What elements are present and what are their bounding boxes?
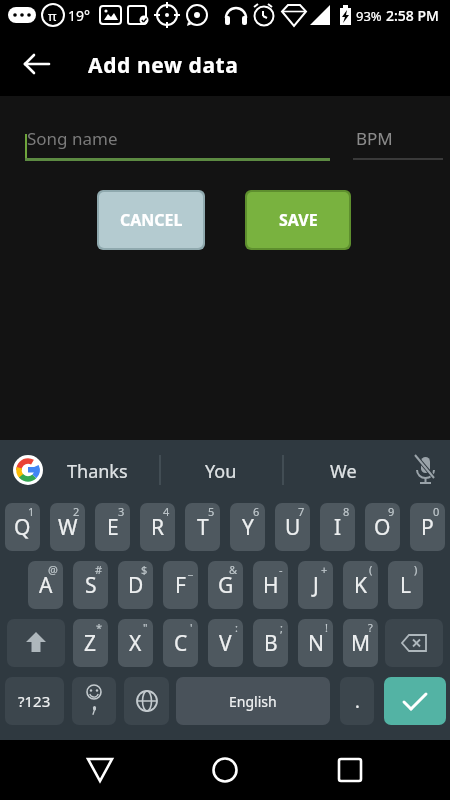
button[interactable] bbox=[124, 677, 169, 725]
button[interactable]: J bbox=[298, 561, 333, 609]
staticText: H bbox=[263, 571, 279, 600]
button[interactable] bbox=[385, 619, 443, 667]
button[interactable]: Y bbox=[230, 503, 265, 551]
staticText: ?123 bbox=[18, 691, 51, 711]
staticText: & bbox=[229, 562, 238, 577]
staticText: C bbox=[174, 629, 188, 658]
button[interactable]: S bbox=[73, 561, 108, 609]
staticText: Q bbox=[14, 513, 31, 542]
staticText: D bbox=[128, 571, 144, 600]
staticText: I bbox=[334, 513, 342, 542]
staticText: * bbox=[96, 620, 103, 635]
button[interactable]: W bbox=[50, 503, 85, 551]
button[interactable]: SAVE bbox=[247, 192, 349, 248]
button[interactable]: D bbox=[118, 561, 153, 609]
staticText: M bbox=[351, 629, 371, 658]
button[interactable]: H bbox=[253, 561, 288, 609]
staticText: 7 bbox=[298, 504, 305, 519]
button[interactable]: I bbox=[320, 503, 355, 551]
staticText: A bbox=[39, 571, 53, 600]
button[interactable]: G bbox=[208, 561, 243, 609]
staticText: _ bbox=[188, 562, 193, 577]
button[interactable]: O bbox=[365, 503, 400, 551]
button[interactable]: T bbox=[185, 503, 220, 551]
button[interactable]: . bbox=[340, 677, 374, 725]
button[interactable]: M bbox=[343, 619, 378, 667]
staticText: K bbox=[354, 571, 367, 600]
staticText: 93% bbox=[356, 7, 382, 25]
staticText: # bbox=[95, 562, 103, 577]
staticText: 3 bbox=[118, 504, 125, 519]
staticText: 19° bbox=[68, 6, 91, 25]
button[interactable]: B bbox=[253, 619, 288, 667]
staticText: : bbox=[235, 620, 238, 635]
staticText: U bbox=[285, 513, 301, 542]
button[interactable]: X bbox=[118, 619, 153, 667]
button[interactable]: V bbox=[208, 619, 243, 667]
staticText: L bbox=[400, 571, 412, 600]
staticText: Add new data bbox=[88, 51, 239, 80]
staticText: We bbox=[330, 459, 357, 484]
staticText: " bbox=[143, 620, 148, 635]
button[interactable]: CANCEL bbox=[99, 192, 203, 248]
button[interactable]: U bbox=[275, 503, 310, 551]
staticText: T bbox=[197, 513, 209, 542]
button[interactable] bbox=[7, 619, 65, 667]
button[interactable]: ?123 bbox=[5, 677, 64, 725]
button[interactable] bbox=[384, 677, 446, 725]
staticText: 1 bbox=[28, 504, 35, 519]
staticText: BPM bbox=[356, 127, 393, 150]
staticText: 2:58 PM bbox=[386, 6, 439, 25]
staticText: P bbox=[421, 513, 434, 542]
staticText: 6 bbox=[253, 504, 260, 519]
button[interactable]: Q bbox=[5, 503, 40, 551]
staticText: ? bbox=[368, 620, 373, 635]
staticText: V bbox=[219, 629, 232, 658]
staticText: Thanks bbox=[67, 459, 128, 484]
button[interactable]: L bbox=[388, 561, 423, 609]
staticText: S bbox=[85, 571, 97, 600]
button[interactable] bbox=[325, 745, 375, 795]
button[interactable]: N bbox=[298, 619, 333, 667]
staticText: R bbox=[151, 513, 165, 542]
staticText: 9 bbox=[388, 504, 395, 519]
staticText: $ bbox=[141, 562, 148, 577]
button[interactable]: K bbox=[343, 561, 378, 609]
staticText: Z bbox=[84, 629, 97, 658]
staticText: Y bbox=[242, 513, 254, 542]
staticText: 0 bbox=[433, 504, 440, 519]
button[interactable]: P bbox=[410, 503, 445, 551]
button[interactable]: English bbox=[176, 677, 330, 725]
staticText: W bbox=[58, 513, 78, 542]
staticText: SAVE bbox=[279, 209, 318, 231]
staticText: @ bbox=[48, 562, 58, 577]
staticText: E bbox=[107, 513, 119, 542]
staticText: ; bbox=[280, 620, 283, 635]
button[interactable] bbox=[200, 745, 250, 795]
staticText: 5 bbox=[208, 504, 215, 519]
staticText: ' bbox=[190, 620, 193, 635]
button[interactable]: E bbox=[95, 503, 130, 551]
staticText: N bbox=[308, 629, 324, 658]
button[interactable]: Z bbox=[73, 619, 108, 667]
staticText: - bbox=[279, 562, 283, 577]
button[interactable]: R bbox=[140, 503, 175, 551]
staticText: ! bbox=[325, 620, 328, 635]
staticText: + bbox=[321, 562, 328, 577]
staticText: ( bbox=[369, 562, 373, 577]
button[interactable]: C bbox=[163, 619, 198, 667]
button[interactable] bbox=[75, 745, 125, 795]
staticText: X bbox=[129, 629, 142, 658]
staticText: You bbox=[205, 459, 237, 484]
staticText: English bbox=[229, 692, 277, 711]
staticText: ) bbox=[414, 562, 418, 577]
button[interactable]: A bbox=[28, 561, 63, 609]
button[interactable]: F bbox=[163, 561, 198, 609]
staticText: O bbox=[374, 513, 391, 542]
staticText: . bbox=[355, 689, 360, 714]
staticText: CANCEL bbox=[120, 209, 183, 231]
staticText: 2 bbox=[73, 504, 80, 519]
staticText: Song name bbox=[27, 127, 118, 150]
button[interactable] bbox=[24, 54, 50, 74]
button[interactable] bbox=[72, 677, 116, 725]
